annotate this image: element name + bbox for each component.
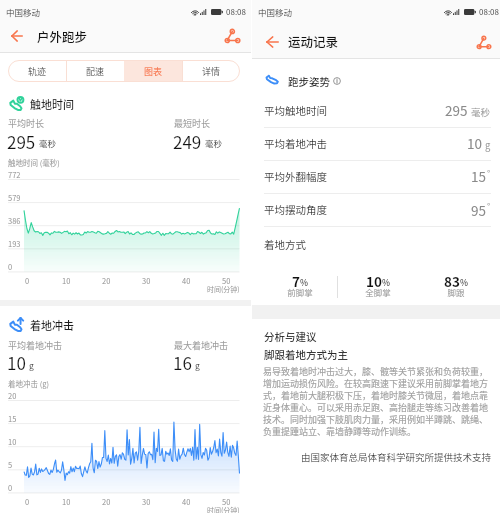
staticText: 平均着地冲击: [264, 136, 327, 151]
staticText: 由国家体育总局体育科学研究所提供技术支持: [263, 450, 491, 464]
button[interactable]: 详情: [182, 60, 240, 82]
staticText: 毫秒: [39, 137, 57, 149]
staticText: 295: [7, 129, 36, 154]
button[interactable]: [252, 127, 500, 160]
staticText: 579: [8, 192, 21, 203]
staticText: 最短时长: [174, 117, 211, 130]
staticText: 运动记录: [288, 32, 339, 50]
staticText: g: [485, 138, 491, 152]
staticText: 中国移动: [6, 6, 41, 18]
button[interactable]: 分享: [472, 30, 496, 54]
staticText: °: [487, 200, 491, 213]
staticText: 最大着地冲击: [174, 339, 229, 352]
staticText: 50: [222, 496, 231, 507]
staticText: 20: [8, 390, 17, 401]
staticText: 着地冲击 (g): [8, 378, 50, 389]
staticText: 跑步姿势: [288, 74, 330, 89]
staticText: 0: [25, 275, 30, 286]
staticText: 5: [8, 459, 13, 470]
button[interactable]: 返回: [5, 24, 29, 48]
staticText: 平均摆动角度: [264, 202, 327, 217]
staticText: 15: [471, 166, 486, 186]
staticText: 40: [182, 275, 191, 286]
staticText: 图表: [144, 65, 163, 78]
staticText: %: [382, 276, 390, 288]
staticText: 配速: [86, 65, 105, 78]
staticText: 平均触地时间: [264, 103, 327, 118]
staticText: 10: [467, 133, 482, 153]
staticText: 10: [366, 271, 382, 291]
staticText: %: [300, 276, 308, 288]
staticText: 193: [8, 238, 21, 249]
button[interactable]: [262, 266, 338, 300]
staticText: 触地时间: [30, 96, 74, 112]
button[interactable]: [252, 93, 500, 126]
button[interactable]: 轨迹: [8, 60, 66, 82]
staticText: 83: [444, 271, 460, 291]
staticText: 95: [471, 200, 486, 220]
staticText: 0: [8, 261, 13, 272]
staticText: 40: [182, 496, 191, 507]
staticText: 10: [7, 350, 26, 375]
staticText: 易导致着地时冲击过大，膝、髋等关节紧张和负荷较重，增加运动损伤风险。在较高跑速下…: [263, 365, 490, 438]
staticText: 772: [8, 169, 21, 180]
staticText: 0: [25, 496, 30, 507]
staticText: 16: [173, 350, 192, 375]
staticText: 时间(分钟): [207, 505, 240, 513]
button[interactable]: 图表: [124, 60, 182, 82]
staticText: °: [487, 167, 491, 180]
staticText: 脚跟: [421, 286, 491, 298]
staticText: 轨迹: [28, 65, 47, 78]
button[interactable]: 分享: [220, 24, 244, 48]
staticText: 08:08: [226, 6, 246, 18]
staticText: 10: [62, 496, 71, 507]
button[interactable]: [340, 266, 416, 300]
staticText: 08:08: [479, 6, 499, 18]
button[interactable]: [252, 160, 500, 193]
staticText: 平均着地冲击: [8, 339, 63, 352]
button[interactable]: [252, 193, 500, 226]
staticText: 10: [62, 275, 71, 286]
staticText: 249: [173, 129, 202, 154]
staticText: 分析与建议: [264, 329, 317, 344]
staticText: 全脚掌: [343, 286, 413, 298]
staticText: 20: [102, 496, 111, 507]
staticText: 详情: [202, 65, 221, 78]
staticText: 前脚掌: [265, 286, 335, 298]
staticText: %: [460, 276, 468, 288]
staticText: 毫秒: [205, 137, 223, 149]
staticText: 平均外翻幅度: [264, 169, 327, 184]
staticText: 平均时长: [8, 117, 45, 130]
staticText: g: [29, 359, 34, 371]
staticText: 着地冲击: [30, 317, 74, 333]
staticText: g: [195, 359, 200, 371]
button[interactable]: 返回: [260, 30, 284, 54]
staticText: 毫秒: [471, 105, 491, 119]
button[interactable]: 配速: [66, 60, 124, 82]
staticText: 30: [142, 275, 151, 286]
staticText: 50: [222, 275, 231, 286]
staticText: 20: [102, 275, 111, 286]
staticText: 时间(分钟): [207, 284, 240, 294]
staticText: 脚跟着地方式为主: [264, 347, 348, 362]
button[interactable]: [418, 266, 494, 300]
staticText: 295: [445, 100, 468, 120]
staticText: 户外跑步: [37, 27, 88, 45]
staticText: 7: [292, 271, 300, 291]
staticText: 10: [8, 436, 17, 447]
staticText: 386: [8, 215, 21, 226]
staticText: 着地方式: [264, 237, 306, 252]
staticText: 中国移动: [258, 6, 293, 18]
staticText: 15: [8, 413, 17, 424]
staticText: 0: [8, 482, 13, 493]
staticText: 触地时间 (毫秒): [8, 157, 60, 168]
staticText: 30: [142, 496, 151, 507]
